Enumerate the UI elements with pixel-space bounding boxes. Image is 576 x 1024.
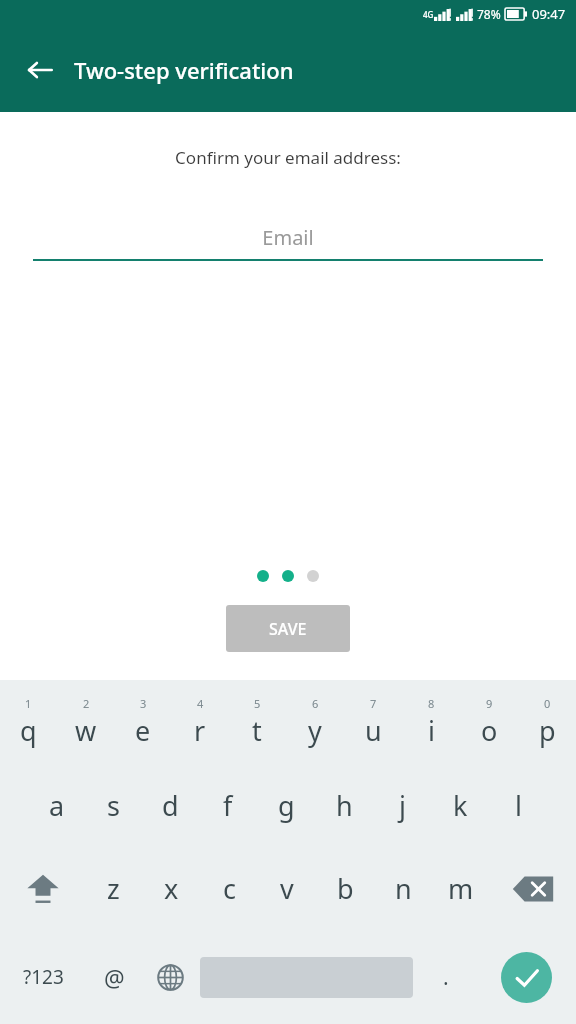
button[interactable]: Shift: [0, 847, 85, 930]
staticText: f: [223, 787, 233, 824]
staticText: u: [365, 712, 382, 749]
staticText: 3: [140, 696, 147, 711]
staticText: i: [428, 712, 435, 749]
button[interactable]: Change language: [142, 930, 198, 1024]
button[interactable]: Back: [14, 44, 66, 96]
staticText: c: [223, 870, 236, 907]
staticText: s: [107, 787, 120, 824]
button[interactable]: 8: [402, 680, 460, 764]
staticText: r: [194, 712, 206, 749]
staticText: 2: [83, 696, 90, 711]
staticText: o: [481, 712, 498, 749]
staticText: n: [395, 870, 412, 907]
button[interactable]: 9: [460, 680, 518, 764]
staticText: w: [75, 712, 97, 749]
staticText: 4: [197, 696, 204, 711]
staticText: h: [336, 787, 353, 824]
button[interactable]: l: [489, 764, 547, 847]
button[interactable]: f: [199, 764, 257, 847]
staticText: 4G: [423, 9, 434, 20]
staticText: a: [49, 787, 65, 824]
button[interactable]: x: [142, 847, 200, 930]
button[interactable]: g: [257, 764, 315, 847]
button[interactable]: 0: [518, 680, 576, 764]
button[interactable]: 5: [228, 680, 286, 764]
staticText: ?123: [23, 964, 64, 990]
staticText: 6: [312, 696, 319, 711]
button[interactable]: b: [316, 847, 374, 930]
staticText: q: [20, 712, 37, 749]
staticText: @: [104, 962, 125, 993]
button[interactable]: z: [85, 847, 142, 930]
button[interactable]: k: [431, 764, 489, 847]
staticText: e: [135, 712, 151, 749]
staticText: 7: [370, 696, 377, 711]
staticText: 78%: [477, 6, 501, 22]
staticText: z: [107, 870, 120, 907]
staticText: p: [539, 712, 556, 749]
button[interactable]: Done: [476, 930, 576, 1024]
staticText: 5: [254, 696, 261, 711]
staticText: x: [164, 870, 179, 907]
staticText: 0: [544, 696, 551, 711]
staticText: t: [252, 712, 262, 749]
staticText: b: [337, 870, 354, 907]
button[interactable]: 3: [114, 680, 171, 764]
button[interactable]: 4: [171, 680, 228, 764]
staticText: j: [399, 787, 406, 824]
staticText: Email: [33, 224, 543, 251]
staticText: .: [443, 963, 449, 992]
staticText: Confirm your email address:: [0, 146, 576, 169]
staticText: 8: [428, 696, 435, 711]
staticText: l: [515, 787, 522, 824]
button[interactable]: n: [374, 847, 432, 930]
button[interactable]: .: [415, 930, 476, 1024]
button[interactable]: @: [86, 930, 142, 1024]
button[interactable]: j: [373, 764, 431, 847]
button[interactable]: d: [142, 764, 199, 847]
button[interactable]: ?123: [0, 930, 86, 1024]
button[interactable]: v: [258, 847, 316, 930]
staticText: v: [280, 870, 294, 907]
button[interactable]: 6: [286, 680, 344, 764]
staticText: 9: [486, 696, 493, 711]
staticText: 09:47: [532, 5, 566, 23]
staticText: m: [448, 870, 474, 907]
staticText: g: [278, 787, 295, 824]
button[interactable]: c: [200, 847, 258, 930]
staticText: 1: [25, 696, 32, 711]
button[interactable]: 7: [344, 680, 402, 764]
button[interactable]: SAVE: [226, 605, 350, 652]
staticText: y: [308, 712, 322, 749]
button[interactable]: Backspace: [490, 847, 576, 930]
button[interactable]: a: [28, 764, 85, 847]
button[interactable]: 1: [0, 680, 57, 764]
staticText: Two-step verification: [74, 55, 294, 85]
staticText: k: [453, 787, 468, 824]
button[interactable]: m: [432, 847, 490, 930]
button[interactable]: h: [315, 764, 373, 847]
staticText: SAVE: [269, 618, 307, 640]
staticText: d: [162, 787, 179, 824]
button[interactable]: Space: [198, 930, 415, 1024]
button[interactable]: s: [85, 764, 142, 847]
button[interactable]: 2: [57, 680, 114, 764]
